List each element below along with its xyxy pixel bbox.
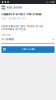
staticText: Lead time xyxy=(1,34,10,36)
staticText: Add alarm xyxy=(6,6,21,9)
staticText: How early do you need to be informed of … xyxy=(1,25,43,31)
button[interactable]: ADD ALARM xyxy=(1,46,55,53)
staticText: Repeaters of W-17298 from Browsell xyxy=(1,13,42,16)
staticText: 10 minutes xyxy=(1,38,13,41)
staticText: SEE DEMO FACTO xyxy=(1,17,26,20)
staticText: ADD ALARM xyxy=(21,48,34,51)
